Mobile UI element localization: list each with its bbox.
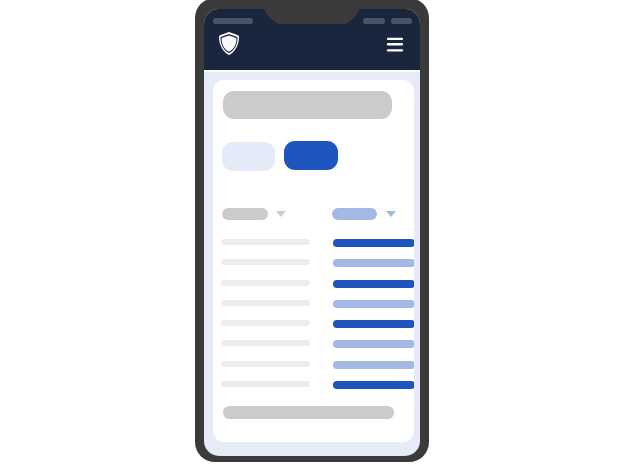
button[interactable]: List row 5 xyxy=(221,313,413,333)
button[interactable]: List row 1 xyxy=(221,232,413,252)
button[interactable]: List row 8 xyxy=(221,374,413,394)
button[interactable]: Security xyxy=(219,32,239,55)
button[interactable]: List row 7 xyxy=(221,354,413,374)
button[interactable]: List row 3 xyxy=(221,273,413,293)
button[interactable]: List row 2 xyxy=(221,252,413,272)
button[interactable] xyxy=(222,208,268,220)
button[interactable]: Menu xyxy=(384,34,406,54)
button[interactable] xyxy=(332,208,377,220)
button[interactable] xyxy=(284,141,338,170)
button[interactable]: List row 6 xyxy=(221,334,413,354)
button[interactable]: List row 4 xyxy=(221,293,413,313)
button[interactable] xyxy=(222,142,275,171)
